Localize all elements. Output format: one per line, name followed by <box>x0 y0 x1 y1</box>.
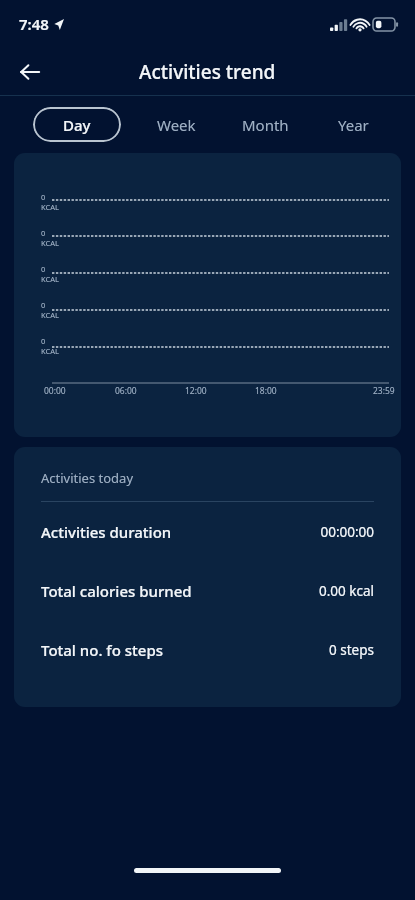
staticText: Total no. fo steps <box>41 640 164 660</box>
staticText: Day <box>63 115 91 135</box>
staticText: 00:00 <box>44 385 66 397</box>
staticText: KCAL <box>41 238 59 248</box>
button[interactable]: Total calories burned <box>41 561 374 620</box>
staticText: Activities duration <box>41 522 172 542</box>
staticText: 0 <box>41 192 46 202</box>
button[interactable]: Day <box>33 107 121 142</box>
staticText: 0 <box>41 228 46 238</box>
button[interactable]: Year <box>324 107 382 142</box>
staticText: 23:59 <box>373 385 395 397</box>
staticText: KCAL <box>41 202 59 212</box>
staticText: 06:00 <box>115 385 137 397</box>
staticText: 18:00 <box>255 385 277 397</box>
staticText: Activities today <box>41 469 134 487</box>
button[interactable]: Week <box>143 107 209 142</box>
staticText: 0.00 kcal <box>318 582 374 600</box>
staticText: 0 <box>41 300 46 310</box>
button[interactable]: Back <box>8 50 52 94</box>
staticText: KCAL <box>41 274 59 284</box>
staticText: KCAL <box>41 346 59 356</box>
staticText: Year <box>338 115 369 135</box>
staticText: 12:00 <box>185 385 207 397</box>
staticText: Week <box>157 115 196 135</box>
button[interactable]: Total no. fo steps <box>41 620 374 679</box>
staticText: Total calories burned <box>41 581 192 601</box>
button[interactable]: Month <box>228 107 302 142</box>
staticText: 0 <box>41 336 46 346</box>
staticText: 0 steps <box>329 641 374 659</box>
staticText: 00:00:00 <box>320 523 374 541</box>
staticText: 0 <box>41 264 46 274</box>
button[interactable]: Activities duration <box>41 502 374 561</box>
staticText: 7:48 <box>19 14 49 34</box>
staticText: KCAL <box>41 310 59 320</box>
staticText: Activities trend <box>139 59 276 85</box>
staticText: Month <box>242 115 289 135</box>
